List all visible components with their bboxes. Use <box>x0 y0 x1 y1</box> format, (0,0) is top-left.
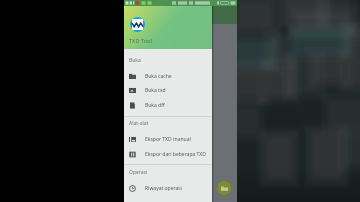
button[interactable]: Buka dff <box>124 98 212 112</box>
staticText: Ekspor dari beberapa TXD <box>145 151 206 158</box>
button[interactable]: Open file <box>217 181 231 195</box>
staticText: Buka txd <box>145 87 166 94</box>
button[interactable]: Buka txd <box>124 83 212 97</box>
button[interactable]: Ekspor TXD manual <box>124 132 212 146</box>
staticText: Ekspor TXD manual <box>145 136 191 143</box>
staticText: Buka <box>129 57 141 64</box>
staticText: Alat-alat <box>129 120 149 127</box>
button[interactable]: Riwayat operasi <box>124 181 212 195</box>
staticText: Riwayat operasi <box>145 185 182 192</box>
button[interactable]: Ekspor dari beberapa TXD <box>124 147 212 161</box>
staticText: Buka cache <box>145 73 172 80</box>
staticText: TXD Tool <box>129 37 152 45</box>
staticText: Buka dff <box>145 102 165 109</box>
button[interactable]: Buka cache <box>124 69 212 83</box>
staticText: Operasi <box>129 169 148 176</box>
